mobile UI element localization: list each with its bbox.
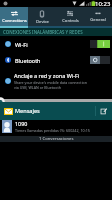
- staticText: Anclaje a red y zona Wi-Fi: [14, 72, 80, 79]
- button[interactable]: Bluetooth: [0, 52, 112, 68]
- staticText: General: [90, 17, 106, 23]
- button[interactable]: Anclaje a red y zona Wi-Fi: [0, 70, 112, 92]
- button[interactable]: Wi-Fi: [0, 36, 112, 52]
- staticText: 1 Conversaciones: [39, 136, 74, 142]
- button[interactable]: Connections: [0, 7, 28, 28]
- button[interactable]: New message: [96, 102, 112, 120]
- staticText: Share your device's mobile data connecti…: [14, 80, 87, 85]
- staticText: Controls: [62, 18, 79, 24]
- staticText: 10:23: [95, 0, 111, 7]
- staticText: Connections: [2, 18, 27, 24]
- staticText: via USB, WLAN or Bluetooth: [14, 85, 61, 90]
- staticText: CONEXIONES INALÁMBRICAS Y REDES: [3, 29, 83, 35]
- staticText: Bluetooth: [15, 57, 41, 64]
- button[interactable]: General: [84, 7, 112, 28]
- button[interactable]: Controls: [56, 7, 84, 28]
- button[interactable]: Wi-Fi on: [90, 40, 110, 48]
- button[interactable]: 1090: [0, 119, 112, 133]
- button[interactable]: Device: [28, 7, 56, 28]
- staticText: 1090: [15, 120, 28, 127]
- staticText: Device: [36, 19, 49, 25]
- staticText: Wi-Fi: [15, 41, 28, 48]
- button[interactable]: Bluetooth off: [90, 56, 110, 64]
- staticText: Tienes llamadas perdidas (%: 600242, 10:…: [15, 128, 90, 133]
- staticText: Mensajes: [15, 107, 40, 115]
